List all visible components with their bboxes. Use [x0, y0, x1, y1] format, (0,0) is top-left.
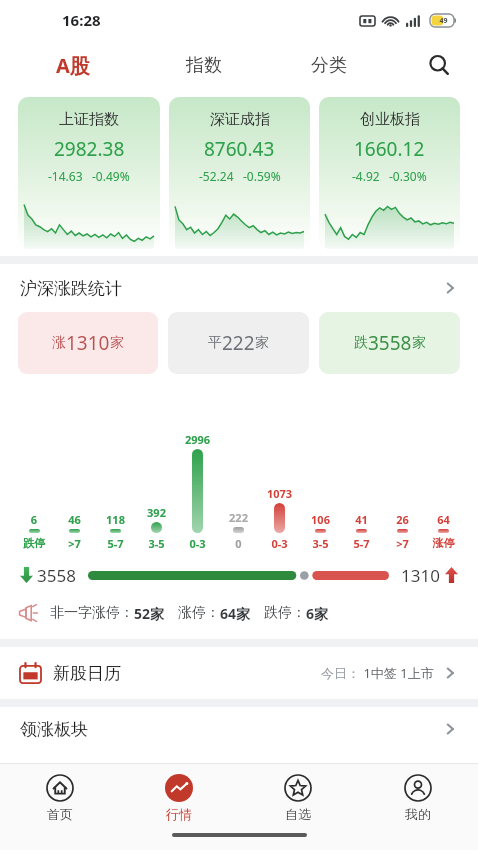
staticText: 3-5 — [136, 536, 177, 550]
staticText: 自选 — [285, 806, 311, 822]
button[interactable]: 分类 — [305, 48, 353, 83]
staticText: 1中签 1上市 — [360, 664, 438, 682]
staticText: 0 — [218, 536, 259, 550]
staticText: 1660.12 — [354, 136, 425, 162]
button[interactable]: 跌 — [319, 312, 460, 374]
staticText: 6家 — [306, 604, 329, 623]
staticText: 2982.38 — [54, 136, 125, 162]
staticText: 行情 — [166, 806, 192, 822]
staticText: 49 — [439, 16, 448, 26]
button[interactable]: 行情 — [119, 764, 238, 832]
button[interactable]: 自选 — [238, 764, 358, 832]
staticText: 3-5 — [300, 536, 341, 550]
staticText: -14.63 — [48, 168, 83, 184]
staticText: 跌停 — [14, 536, 54, 550]
staticText: 46 — [54, 512, 95, 527]
button[interactable]: 沪深涨跌统计 — [0, 264, 478, 312]
staticText: 涨停 — [423, 536, 464, 550]
staticText: 0-3 — [259, 536, 300, 550]
staticText: 118 — [95, 512, 136, 527]
staticText: >7 — [382, 536, 423, 550]
button[interactable]: 指数 — [180, 48, 228, 83]
staticText: 涨 — [52, 334, 66, 352]
button[interactable]: 上证指数 — [18, 97, 160, 249]
staticText: 创业板指 — [360, 110, 420, 129]
staticText: 8760.43 — [204, 136, 275, 162]
staticText: 上证指数 — [59, 110, 119, 129]
other: 首页 — [46, 774, 74, 802]
staticText: 指数 — [186, 54, 222, 77]
staticText: 跌停： — [264, 604, 306, 622]
staticText: 今日： — [321, 665, 360, 681]
staticText: 1073 — [259, 486, 300, 501]
button[interactable]: 平 — [168, 312, 309, 374]
staticText: 深证成指 — [210, 110, 270, 129]
staticText: 222 — [222, 330, 255, 356]
staticText: 我的 — [405, 806, 431, 822]
staticText: 涨停： — [178, 604, 220, 622]
staticText: 新股日历 — [53, 663, 121, 684]
button[interactable]: 深证成指 — [169, 97, 310, 249]
staticText: 0-3 — [177, 536, 218, 550]
staticText: -52.24 — [199, 168, 234, 184]
button[interactable]: A股 — [50, 46, 96, 85]
staticText: 分类 — [311, 54, 347, 77]
button[interactable]: 领涨板块 — [0, 707, 478, 751]
button[interactable]: 我的 — [358, 764, 478, 832]
staticText: 16:28 — [62, 10, 101, 30]
staticText: 26 — [382, 512, 423, 527]
staticText: 家 — [255, 334, 269, 352]
staticText: 平 — [208, 334, 222, 352]
staticText: 3558 — [368, 330, 412, 356]
staticText: 领涨板块 — [20, 719, 88, 740]
staticText: 5-7 — [95, 536, 136, 550]
staticText: -0.49% — [92, 168, 130, 184]
button[interactable]: Search — [420, 46, 458, 84]
staticText: 6 — [14, 512, 54, 527]
other: 我的 — [404, 774, 432, 802]
staticText: 52家 — [134, 604, 165, 623]
staticText: 1310 — [66, 330, 110, 356]
staticText: 392 — [136, 505, 177, 520]
staticText: >7 — [54, 536, 95, 550]
staticText: 3558 — [37, 564, 76, 587]
staticText: 222 — [218, 510, 259, 525]
staticText: 家 — [110, 334, 124, 352]
staticText: 5-7 — [341, 536, 382, 550]
button[interactable]: 涨 — [18, 312, 158, 374]
staticText: 64家 — [220, 604, 251, 623]
other: 行情 — [165, 774, 193, 802]
button[interactable]: 新股日历 — [0, 647, 478, 699]
staticText: 41 — [341, 512, 382, 527]
staticText: 首页 — [47, 806, 73, 822]
staticText: 家 — [412, 334, 426, 352]
staticText: 64 — [423, 512, 464, 527]
button[interactable]: 创业板指 — [319, 97, 460, 249]
button[interactable]: 首页 — [0, 764, 119, 832]
staticText: 跌 — [354, 334, 368, 352]
staticText: 106 — [300, 512, 341, 527]
staticText: 非一字涨停： — [50, 604, 134, 622]
other: 自选 — [284, 774, 312, 802]
staticText: 沪深涨跌统计 — [20, 278, 122, 299]
staticText: -0.30% — [389, 168, 427, 184]
staticText: -0.59% — [243, 168, 281, 184]
staticText: 2996 — [177, 432, 218, 447]
staticText: 1310 — [401, 564, 440, 587]
staticText: -4.92 — [352, 168, 380, 184]
staticText: A股 — [56, 52, 90, 79]
